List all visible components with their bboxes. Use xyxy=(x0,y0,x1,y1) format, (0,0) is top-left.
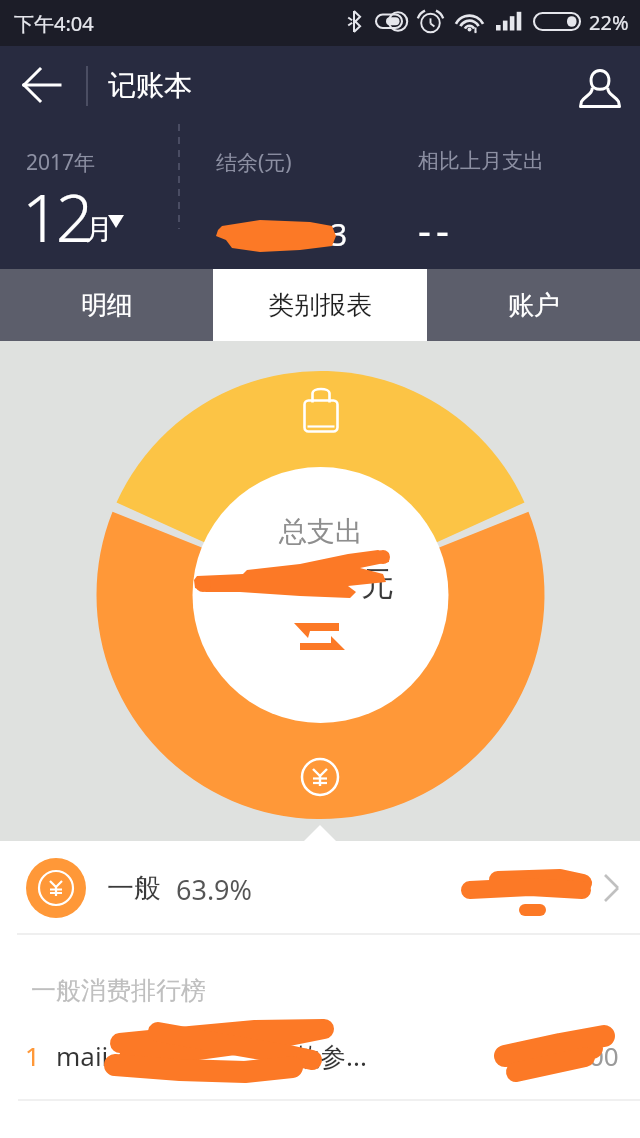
button[interactable]: 12 xyxy=(10,154,140,244)
staticText: 3 xyxy=(330,214,348,255)
staticText: 一般 xyxy=(107,871,161,905)
staticText: 22% xyxy=(589,9,629,36)
staticText: -- xyxy=(418,202,454,256)
staticText: 结余(元) xyxy=(216,148,292,177)
button[interactable]: 一般 xyxy=(0,841,640,933)
staticText: maii xyxy=(56,1038,109,1073)
staticText: 总支出 xyxy=(279,514,363,549)
button[interactable]: 账户 xyxy=(427,269,640,341)
button[interactable]: Profile xyxy=(560,46,640,124)
staticText: .00 xyxy=(582,1038,619,1073)
staticText: 记账本 xyxy=(108,68,192,103)
staticText: 63.9% xyxy=(176,871,253,908)
staticText: 月 xyxy=(85,212,113,247)
staticText: 元 xyxy=(361,563,394,605)
staticText: 明细 xyxy=(81,289,133,322)
button[interactable]: 类别报表 xyxy=(213,269,427,341)
button[interactable]: 1 xyxy=(0,1010,640,1098)
staticText: 相比上月支出 xyxy=(418,148,544,174)
button[interactable]: 明细 xyxy=(0,269,213,341)
staticText: 款参... xyxy=(294,1038,367,1074)
staticText: 12 xyxy=(22,171,90,261)
staticText: 账户 xyxy=(508,289,560,322)
staticText: 下午4:04 xyxy=(14,10,94,37)
staticText: 类别报表 xyxy=(268,289,372,322)
staticText: 2017年 xyxy=(26,148,96,177)
staticText: 一般消费排行榜 xyxy=(31,975,206,1006)
button[interactable]: Category expense chart xyxy=(96,366,546,822)
staticText: 1 xyxy=(25,1038,40,1073)
button[interactable]: Back xyxy=(0,46,84,124)
